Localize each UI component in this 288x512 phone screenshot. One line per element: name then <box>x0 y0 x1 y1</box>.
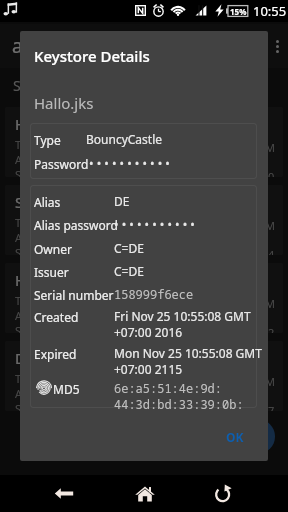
staticText: • • • • • • • • • • • <box>114 216 195 232</box>
staticText: Sample.jks <box>15 192 91 212</box>
staticText: 10:48 AM <box>227 218 275 233</box>
staticText: SHA1 a4:5f:c2:33 <box>15 401 110 411</box>
staticText: Alias DE <box>15 386 71 401</box>
staticText: Type BouncyCastle <box>15 293 127 308</box>
staticText: 10:55 AM <box>227 140 275 155</box>
staticText: Type BouncyCastle <box>15 371 127 386</box>
staticText: Alias password <box>34 217 118 233</box>
staticText: SHA1 a4:5f:c2:33 <box>15 323 110 333</box>
button[interactable]: Home <box>117 476 173 511</box>
staticText: C=DE <box>114 240 144 256</box>
staticText: Keystore Details <box>34 46 150 66</box>
button[interactable]: Add keystore <box>240 419 275 454</box>
button[interactable]: Refresh <box>195 476 251 511</box>
staticText: Type <box>34 132 61 148</box>
staticText: Home.jks <box>15 270 81 290</box>
button[interactable]: Hallo.jks <box>5 107 283 177</box>
staticText: Alias DE <box>15 152 71 167</box>
button[interactable]: OK <box>214 422 256 452</box>
staticText: Alias <box>34 194 61 210</box>
staticText: OK <box>226 429 244 445</box>
staticText: Issuer <box>34 264 69 280</box>
staticText: C=DE <box>114 263 144 279</box>
staticText: 09:12 AM <box>227 296 275 311</box>
staticText: BouncyCastle <box>86 131 163 147</box>
staticText: SHA1 a4:5f:c2:33 <box>15 245 110 255</box>
staticText: • • • • • • • • • • • <box>89 155 170 171</box>
staticText: 10:55 <box>253 2 287 20</box>
staticText: 08:31 AM <box>227 374 275 389</box>
staticText: Alias DE <box>15 230 71 245</box>
staticText: 0 <box>268 169 275 177</box>
staticText: Hallo.jks <box>15 114 75 134</box>
staticText: 4 <box>268 247 275 255</box>
staticText: DE <box>114 193 130 209</box>
staticText: Type BouncyCastle <box>15 137 127 152</box>
button[interactable]: apkeystore <box>0 24 288 68</box>
staticText: Created <box>34 309 79 325</box>
staticText: Mon Nov 25 10:55:08 GMT +07:00 2115 <box>114 345 262 377</box>
staticText: Debug.jks <box>15 348 86 368</box>
staticText: Serial number <box>34 287 114 303</box>
staticText: Expired <box>34 346 77 362</box>
staticText: apkeystore <box>12 33 111 59</box>
staticText: Hallo.jks <box>34 93 94 113</box>
staticText: 2 <box>268 325 275 333</box>
button[interactable]: Back <box>36 476 92 511</box>
button[interactable]: Home.jks <box>5 263 283 333</box>
staticText: Owner <box>34 241 72 257</box>
staticText: 15% <box>230 6 247 17</box>
staticText: Fri Nov 25 10:55:08 GMT +07:00 2016 <box>114 308 251 340</box>
staticText: 6e:a5:51:4e:9d: 44:3d:bd:33:39:0b: <box>114 380 244 413</box>
button[interactable]: Sample.jks <box>5 185 283 255</box>
staticText: SHOW ALL <box>13 76 83 95</box>
staticText: 158999f6ece <box>114 286 194 302</box>
staticText: Alias DE <box>15 308 71 323</box>
staticText: Password <box>34 156 89 172</box>
button[interactable]: Debug.jks <box>5 341 283 411</box>
staticText: MD5 <box>53 381 80 397</box>
staticText: Type BouncyCastle <box>15 215 127 230</box>
staticText: SHA1 a4:5f:c2:33 <box>15 167 110 177</box>
staticText: 7 <box>268 403 275 411</box>
